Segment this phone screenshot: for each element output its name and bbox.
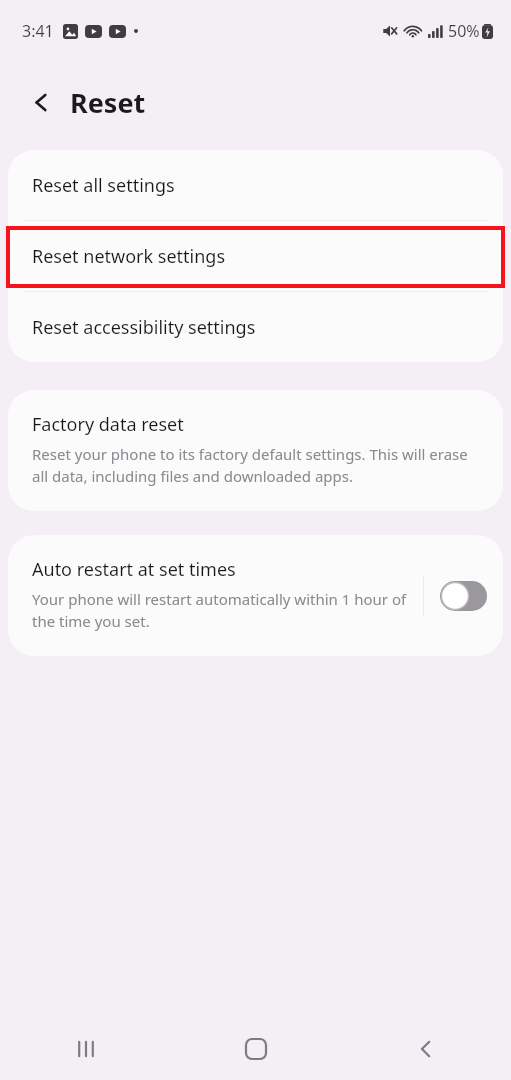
button[interactable]: Home — [171, 1018, 341, 1080]
staticText: Reset network settings — [32, 244, 226, 269]
staticText: Reset all settings — [32, 173, 175, 198]
button[interactable]: Back — [341, 1018, 511, 1080]
button[interactable]: Factory data reset — [8, 390, 503, 511]
staticText: 50% — [448, 20, 480, 42]
button[interactable]: Reset network settings — [8, 221, 503, 291]
button[interactable]: Auto restart at set times — [8, 535, 503, 656]
staticText: Factory data reset — [32, 412, 184, 437]
staticText: Reset — [70, 84, 146, 121]
staticText: Reset accessibility settings — [32, 315, 256, 340]
button[interactable]: Auto restart toggle — [440, 581, 487, 611]
button[interactable]: Back — [24, 85, 58, 119]
button[interactable]: Reset accessibility settings — [8, 292, 503, 362]
button[interactable]: Reset all settings — [8, 150, 503, 220]
staticText: Your phone will restart automatically wi… — [32, 589, 415, 632]
button[interactable]: Recents — [0, 1018, 171, 1080]
staticText: Auto restart at set times — [32, 557, 236, 582]
staticText: 3:41 — [22, 20, 54, 42]
staticText: Reset your phone to its factory default … — [32, 444, 479, 487]
